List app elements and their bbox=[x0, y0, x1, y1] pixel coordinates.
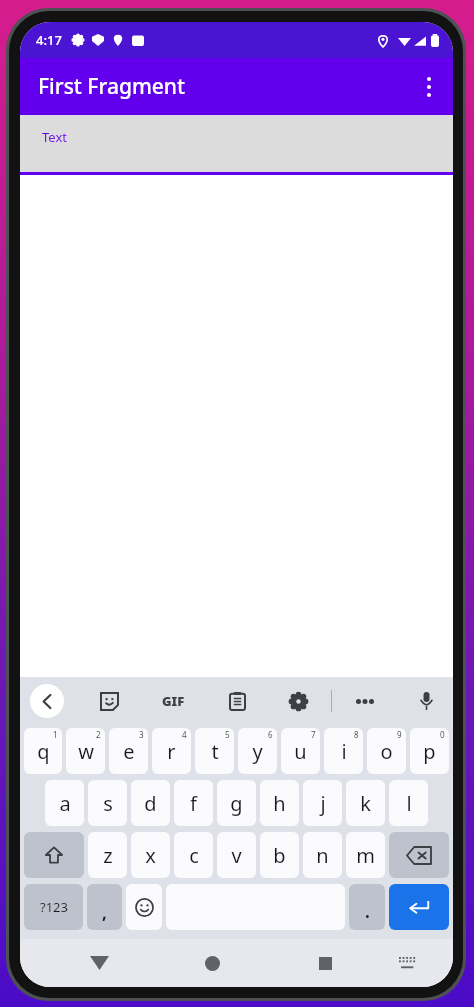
button[interactable]: b bbox=[260, 832, 299, 878]
staticText: k bbox=[360, 790, 371, 817]
staticText: 4:17 bbox=[36, 31, 62, 49]
staticText: v bbox=[231, 842, 242, 869]
staticText: x bbox=[145, 842, 156, 869]
button[interactable]: Stickers bbox=[92, 684, 126, 718]
staticText: i bbox=[341, 738, 347, 765]
button[interactable]: g bbox=[217, 780, 256, 826]
button[interactable]: m bbox=[346, 832, 385, 878]
button[interactable]: o bbox=[367, 728, 406, 774]
button[interactable]: x bbox=[131, 832, 170, 878]
button[interactable]: j bbox=[303, 780, 342, 826]
staticText: 5 bbox=[225, 729, 230, 740]
button[interactable]: . bbox=[349, 884, 385, 930]
staticText: 6 bbox=[268, 729, 273, 740]
button[interactable]: k bbox=[346, 780, 385, 826]
staticText: r bbox=[167, 738, 176, 765]
staticText: g bbox=[230, 790, 243, 817]
staticText: 0 bbox=[440, 729, 445, 740]
button[interactable]: a bbox=[45, 780, 84, 826]
button[interactable]: h bbox=[260, 780, 299, 826]
staticText: Text bbox=[42, 128, 67, 146]
button[interactable]: Enter bbox=[389, 884, 449, 930]
button[interactable]: i bbox=[324, 728, 363, 774]
button[interactable]: v bbox=[217, 832, 256, 878]
button[interactable]: Back bbox=[30, 684, 64, 718]
button[interactable]: e bbox=[109, 728, 148, 774]
staticText: , bbox=[102, 901, 107, 924]
button[interactable]: n bbox=[303, 832, 342, 878]
button[interactable]: ?123 bbox=[24, 884, 83, 930]
button[interactable]: GIF bbox=[153, 684, 193, 718]
button[interactable]: Voice input bbox=[409, 684, 443, 718]
staticText: m bbox=[356, 842, 375, 869]
staticText: GIF bbox=[162, 692, 185, 710]
button[interactable]: Recents bbox=[303, 941, 347, 985]
staticText: 8 bbox=[354, 729, 359, 740]
staticText: w bbox=[78, 738, 94, 765]
button[interactable]: s bbox=[88, 780, 127, 826]
button[interactable]: Home bbox=[190, 941, 234, 985]
staticText: l bbox=[406, 790, 412, 817]
button[interactable]: More bbox=[348, 684, 382, 718]
button[interactable]: u bbox=[281, 728, 320, 774]
button[interactable]: r bbox=[152, 728, 191, 774]
button[interactable]: , bbox=[87, 884, 122, 930]
staticText: First Fragment bbox=[38, 72, 186, 101]
button[interactable]: Settings bbox=[281, 684, 315, 718]
staticText: c bbox=[189, 842, 199, 869]
staticText: j bbox=[320, 790, 326, 817]
staticText: d bbox=[144, 790, 157, 817]
staticText: y bbox=[252, 738, 263, 765]
button[interactable]: t bbox=[195, 728, 234, 774]
staticText: z bbox=[103, 842, 113, 869]
staticText: b bbox=[273, 842, 286, 869]
button[interactable]: More options bbox=[405, 63, 453, 111]
staticText: ?123 bbox=[40, 898, 68, 916]
staticText: 4 bbox=[182, 729, 187, 740]
staticText: . bbox=[365, 900, 370, 923]
staticText: 7 bbox=[311, 729, 316, 740]
button[interactable]: Emoji bbox=[126, 884, 162, 930]
staticText: 2 bbox=[96, 729, 101, 740]
button[interactable]: Text bbox=[20, 115, 453, 175]
staticText: u bbox=[294, 738, 307, 765]
button[interactable]: p bbox=[410, 728, 449, 774]
button[interactable]: Backspace bbox=[389, 832, 449, 878]
staticText: 9 bbox=[397, 729, 402, 740]
button[interactable]: l bbox=[389, 780, 428, 826]
button[interactable]: Clipboard bbox=[220, 684, 254, 718]
staticText: 3 bbox=[139, 729, 144, 740]
staticText: o bbox=[380, 738, 393, 765]
staticText: e bbox=[123, 738, 135, 765]
staticText: s bbox=[103, 790, 113, 817]
button[interactable]: Back bbox=[77, 941, 121, 985]
staticText: f bbox=[190, 790, 197, 817]
button[interactable]: d bbox=[131, 780, 170, 826]
button[interactable]: f bbox=[174, 780, 213, 826]
staticText: h bbox=[273, 790, 286, 817]
button[interactable]: q bbox=[24, 728, 62, 774]
button[interactable]: w bbox=[66, 728, 105, 774]
button[interactable]: Switch keyboard bbox=[387, 943, 427, 983]
button[interactable]: z bbox=[88, 832, 127, 878]
staticText: t bbox=[211, 738, 219, 765]
button[interactable]: Shift bbox=[24, 832, 84, 878]
button[interactable]: c bbox=[174, 832, 213, 878]
staticText: p bbox=[423, 738, 436, 765]
staticText: a bbox=[59, 790, 71, 817]
staticText: 1 bbox=[53, 729, 58, 740]
staticText: n bbox=[316, 842, 329, 869]
staticText: q bbox=[37, 738, 50, 765]
button[interactable]: y bbox=[238, 728, 277, 774]
